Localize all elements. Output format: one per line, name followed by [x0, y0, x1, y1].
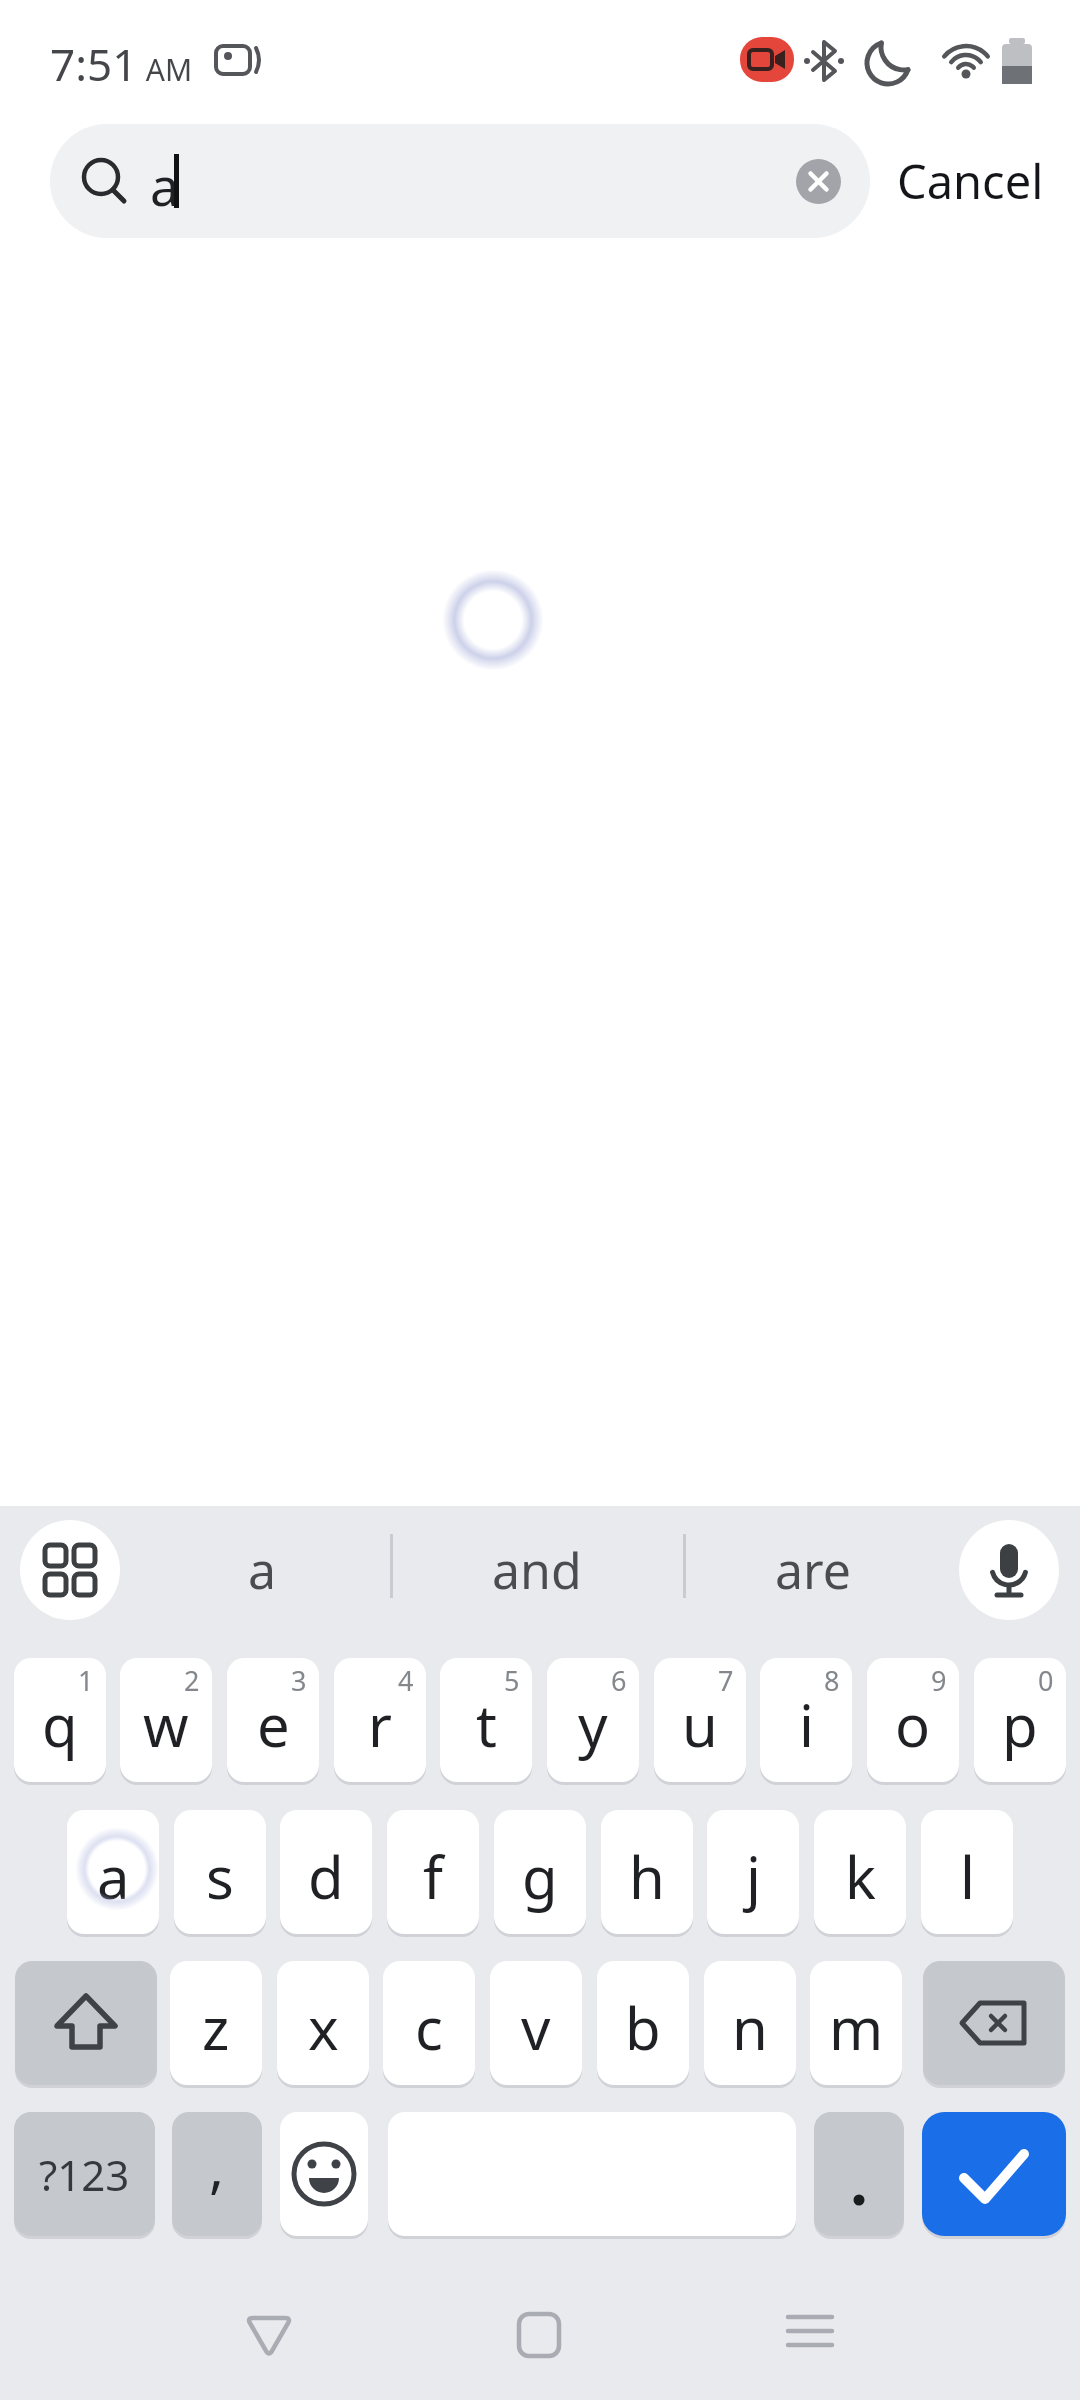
button[interactable]: b: [597, 1961, 689, 2085]
button[interactable]: u: [654, 1658, 746, 1782]
button[interactable]: [280, 2112, 368, 2236]
staticText: m: [829, 1988, 884, 2067]
button[interactable]: [796, 159, 841, 204]
button[interactable]: p: [974, 1658, 1066, 1782]
staticText: i: [799, 1685, 814, 1764]
button[interactable]: k: [814, 1810, 906, 1934]
staticText: a: [248, 1536, 277, 1604]
staticText: z: [202, 1988, 230, 2067]
button[interactable]: z: [170, 1961, 262, 2085]
button[interactable]: d: [280, 1810, 372, 1934]
button[interactable]: w: [120, 1658, 212, 1782]
button[interactable]: [489, 2296, 589, 2384]
staticText: c: [415, 1988, 443, 2067]
staticText: 1: [78, 1662, 94, 1699]
button[interactable]: a: [67, 1810, 159, 1934]
staticText: AM: [138, 49, 193, 90]
button[interactable]: a: [152, 1522, 372, 1618]
staticText: j: [746, 1837, 761, 1916]
staticText: 7: [718, 1662, 734, 1699]
staticText: e: [257, 1685, 290, 1764]
button[interactable]: i: [760, 1658, 852, 1782]
staticText: 4: [398, 1662, 414, 1699]
staticText: s: [206, 1837, 234, 1916]
staticText: b: [625, 1988, 661, 2067]
button[interactable]: s: [174, 1810, 266, 1934]
staticText: 8: [824, 1662, 840, 1699]
staticText: 3: [291, 1662, 307, 1699]
button[interactable]: h: [601, 1810, 693, 1934]
staticText: 0: [1038, 1662, 1054, 1699]
button[interactable]: y: [547, 1658, 639, 1782]
staticText: ?123: [39, 2146, 130, 2203]
button[interactable]: [814, 2112, 904, 2236]
staticText: a: [150, 150, 180, 221]
button[interactable]: ?123: [14, 2112, 155, 2236]
staticText: Cancel: [897, 149, 1044, 213]
button[interactable]: j: [707, 1810, 799, 1934]
button[interactable]: r: [334, 1658, 426, 1782]
button[interactable]: g: [494, 1810, 586, 1934]
button[interactable]: q: [14, 1658, 106, 1782]
staticText: a: [97, 1837, 130, 1916]
staticText: l: [960, 1837, 975, 1916]
button[interactable]: Cancel: [895, 148, 1045, 214]
button[interactable]: ,: [172, 2112, 262, 2236]
staticText: r: [368, 1685, 392, 1764]
staticText: 5: [504, 1662, 520, 1699]
staticText: u: [682, 1685, 718, 1764]
button[interactable]: [219, 2296, 319, 2384]
button[interactable]: c: [383, 1961, 475, 2085]
staticText: p: [1002, 1685, 1038, 1764]
button[interactable]: o: [867, 1658, 959, 1782]
button[interactable]: [923, 1961, 1065, 2085]
staticText: f: [423, 1837, 443, 1916]
staticText: w: [143, 1685, 189, 1764]
button[interactable]: are: [703, 1522, 923, 1618]
button[interactable]: [15, 1961, 157, 2085]
button[interactable]: [760, 2296, 860, 2384]
staticText: k: [845, 1837, 876, 1916]
button[interactable]: f: [387, 1810, 479, 1934]
staticText: t: [476, 1685, 497, 1764]
staticText: o: [895, 1685, 931, 1764]
button[interactable]: [959, 1520, 1059, 1620]
staticText: g: [522, 1837, 558, 1916]
staticText: v: [521, 1988, 551, 2067]
button[interactable]: l: [921, 1810, 1013, 1934]
button[interactable]: [20, 1520, 120, 1620]
staticText: y: [578, 1685, 608, 1764]
button[interactable]: a: [50, 124, 870, 238]
staticText: and: [492, 1536, 582, 1604]
button[interactable]: and: [427, 1522, 647, 1618]
staticText: q: [42, 1685, 78, 1764]
button[interactable]: n: [704, 1961, 796, 2085]
staticText: 9: [931, 1662, 947, 1699]
button[interactable]: e: [227, 1658, 319, 1782]
staticText: 2: [184, 1662, 200, 1699]
button[interactable]: [922, 2112, 1066, 2236]
button[interactable]: m: [810, 1961, 902, 2085]
staticText: are: [775, 1536, 851, 1604]
staticText: 6: [611, 1662, 627, 1699]
staticText: 7:51: [50, 34, 138, 94]
staticText: x: [308, 1988, 339, 2067]
button[interactable]: t: [440, 1658, 532, 1782]
staticText: d: [308, 1837, 344, 1916]
button[interactable]: x: [277, 1961, 369, 2085]
staticText: n: [732, 1988, 768, 2067]
staticText: h: [629, 1837, 665, 1916]
button[interactable]: v: [490, 1961, 582, 2085]
staticText: ,: [209, 2128, 225, 2204]
